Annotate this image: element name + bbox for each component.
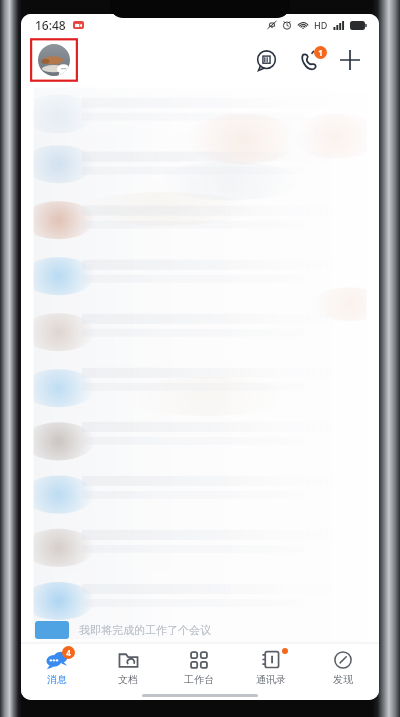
button[interactable] (28, 37, 80, 83)
button[interactable]: 我即将完成的工作了个会议 (21, 617, 379, 643)
button[interactable]: Calls (289, 40, 329, 80)
button[interactable]: 通讯录 (235, 643, 307, 690)
staticText: 16:48 (35, 17, 66, 33)
staticText: 消息 (47, 673, 67, 686)
staticText: 发现 (333, 673, 353, 686)
staticText: HD (314, 19, 328, 31)
button[interactable]: 4 (21, 643, 92, 690)
staticText: 通讯录 (256, 673, 286, 686)
staticText: 1 (318, 47, 323, 58)
staticText: 文档 (118, 673, 138, 686)
button[interactable]: 发现 (307, 643, 379, 690)
button[interactable]: 工作台 (163, 643, 235, 690)
button[interactable]: Scan QR code (247, 41, 285, 79)
staticText: 4 (66, 647, 71, 658)
staticText: 我即将完成的工作了个会议 (79, 623, 211, 637)
staticText: 工作台 (184, 673, 214, 686)
button[interactable]: 文档 (92, 643, 163, 690)
button[interactable]: Add (331, 41, 369, 79)
